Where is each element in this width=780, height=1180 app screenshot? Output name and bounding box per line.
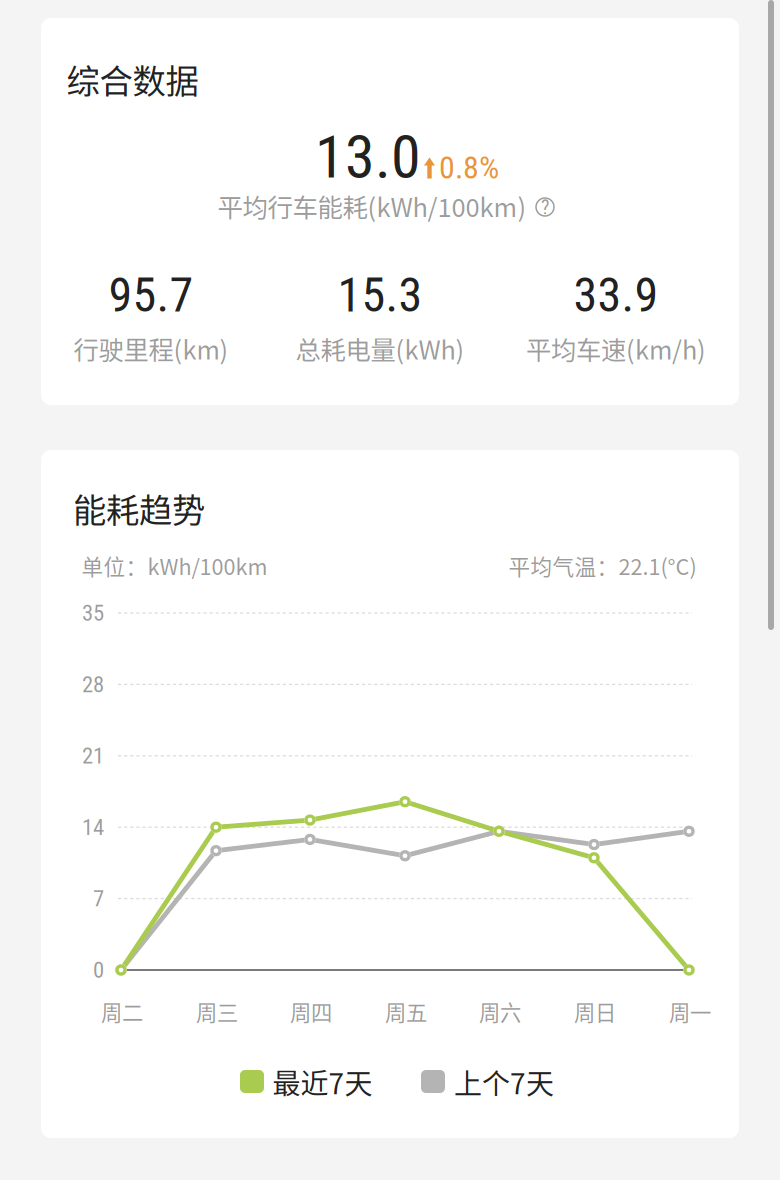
staticText: 周一	[669, 996, 711, 1027]
staticText: 平均气温：22.1(°C)	[508, 550, 696, 581]
staticText: 行驶里程(km)	[73, 330, 228, 367]
staticText: 综合数据	[66, 55, 198, 103]
staticText: 周六	[479, 996, 521, 1027]
staticText: 21	[82, 742, 104, 769]
staticText: 周二	[101, 996, 143, 1027]
staticText: 0	[93, 957, 104, 983]
staticText: 周四	[290, 996, 332, 1027]
staticText: 单位：kWh/100km	[81, 550, 267, 581]
staticText: 0.8%	[439, 149, 499, 186]
staticText: 14	[82, 814, 104, 840]
staticText: 28	[82, 671, 104, 698]
staticText: 13.0	[315, 122, 421, 192]
staticText: 周五	[385, 996, 427, 1027]
staticText: 15.3	[337, 267, 422, 323]
button[interactable]: 关于平均行车能耗	[532, 194, 558, 220]
staticText: 平均车速(km/h)	[526, 330, 706, 367]
staticText: 周三	[196, 996, 238, 1027]
staticText: 最近7天	[272, 1062, 372, 1102]
staticText: 95.7	[108, 267, 193, 323]
staticText: 7	[93, 885, 104, 912]
staticText: 33.9	[573, 267, 658, 323]
staticText: 上个7天	[454, 1062, 554, 1102]
staticText: ?	[541, 196, 549, 219]
staticText: 35	[82, 600, 104, 626]
staticText: 能耗趋势	[73, 484, 205, 532]
staticText: 总耗电量(kWh)	[295, 330, 464, 367]
staticText: 平均行车能耗(kWh/100km)	[217, 188, 526, 224]
staticText: 周日	[574, 996, 616, 1027]
